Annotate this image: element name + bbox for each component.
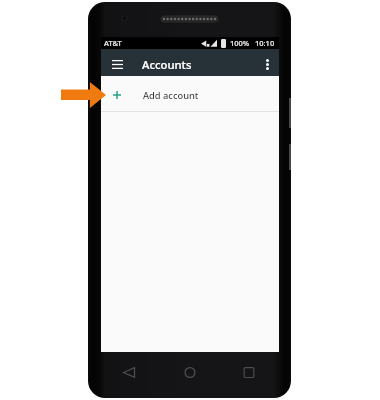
button[interactable]: Add account — [101, 76, 279, 111]
staticText: Add account — [143, 89, 199, 102]
button[interactable]: More options — [257, 51, 277, 78]
staticText: 100% — [230, 38, 250, 48]
button[interactable]: Home — [175, 357, 205, 387]
button[interactable]: Recent apps — [234, 357, 264, 387]
staticText: Accounts — [142, 57, 192, 72]
button[interactable]: Open navigation menu — [107, 51, 127, 78]
staticText: AT&T — [104, 38, 122, 48]
staticText: 10:10 — [255, 38, 275, 48]
button[interactable]: Back — [114, 357, 144, 387]
